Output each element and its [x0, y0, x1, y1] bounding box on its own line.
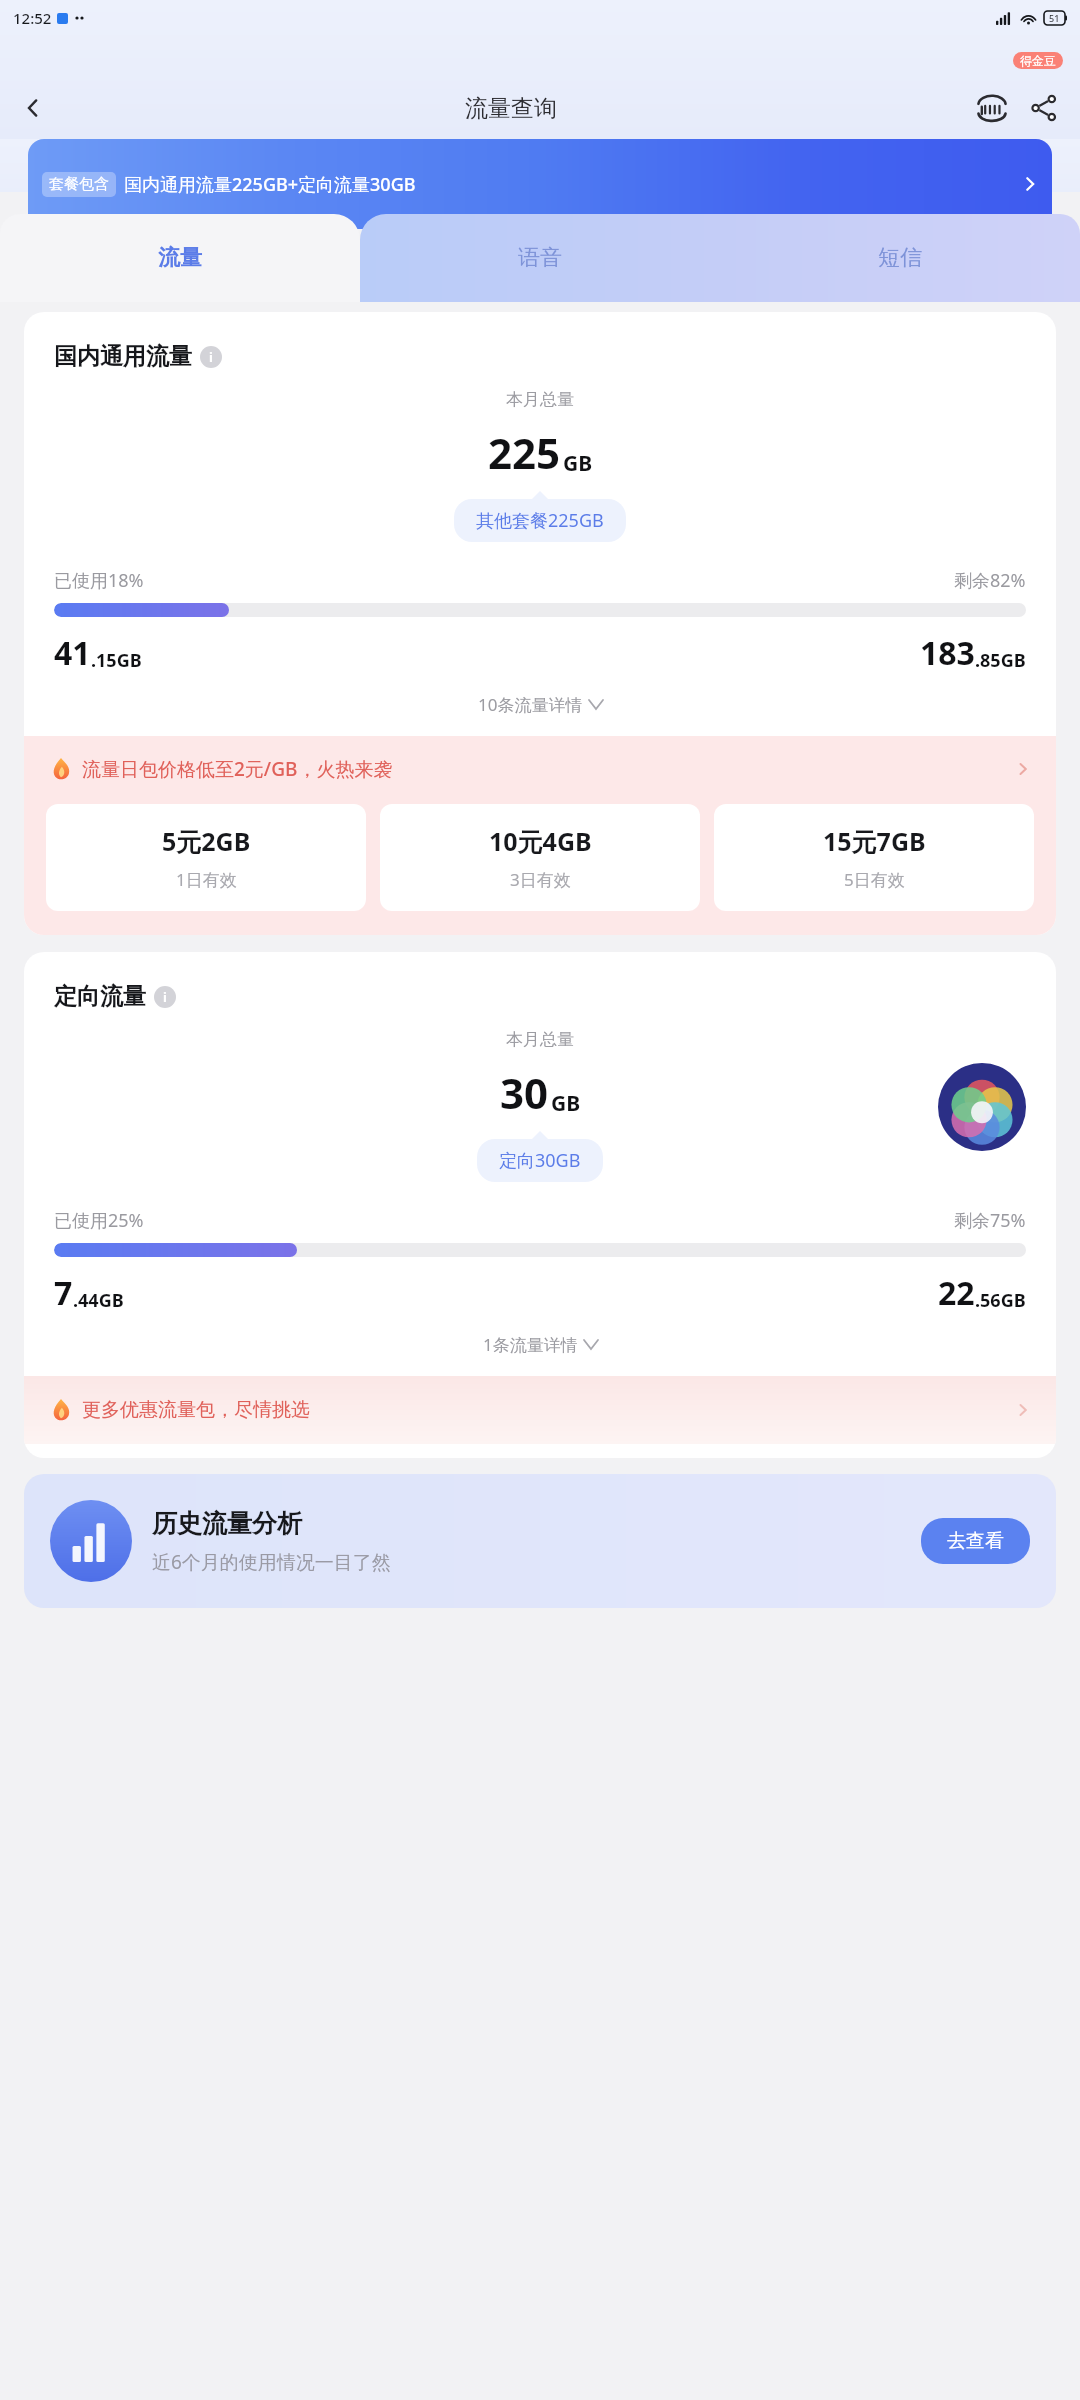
- button[interactable]: 10条流量详情: [54, 693, 1026, 716]
- staticText: 30: [500, 1064, 549, 1121]
- staticText: 短信: [878, 244, 922, 272]
- staticText: 得金豆: [1020, 53, 1056, 68]
- staticText: 3日有效: [510, 868, 571, 891]
- button[interactable]: 5元2GB: [46, 804, 366, 911]
- staticText: 已使用18%: [54, 568, 144, 593]
- staticText: 语音: [518, 244, 562, 272]
- staticText: GB: [551, 1089, 581, 1118]
- staticText: 更多优惠流量包，尽情挑选: [82, 1398, 310, 1422]
- staticText: 剩余82%: [954, 568, 1026, 593]
- staticText: i: [209, 348, 213, 366]
- button[interactable]: 去查看: [921, 1518, 1030, 1564]
- staticText: .85GB: [975, 648, 1026, 673]
- staticText: 去查看: [947, 1529, 1004, 1553]
- staticText: 历史流量分析: [152, 1508, 302, 1539]
- staticText: 国内通用流量: [54, 342, 192, 371]
- staticText: .15GB: [91, 648, 142, 673]
- button[interactable]: 历史流量分析: [24, 1474, 1056, 1608]
- staticText: 10元4GB: [489, 824, 592, 858]
- button[interactable]: 定向30GB: [477, 1139, 603, 1182]
- staticText: GB: [563, 449, 593, 478]
- button[interactable]: Gold beans: [966, 82, 1018, 134]
- button[interactable]: 更多优惠流量包，尽情挑选: [24, 1376, 1056, 1444]
- staticText: 其他套餐225GB: [476, 508, 604, 533]
- staticText: 剩余75%: [954, 1208, 1026, 1233]
- button[interactable]: 其他套餐225GB: [454, 499, 626, 542]
- staticText: .56GB: [975, 1288, 1026, 1313]
- staticText: 近6个月的使用情况一目了然: [152, 1549, 391, 1575]
- staticText: 流量日包价格低至2元/GB，火热来袭: [82, 756, 393, 782]
- staticText: 套餐包含: [49, 175, 109, 194]
- button[interactable]: 语音: [360, 214, 720, 302]
- staticText: 5日有效: [844, 868, 905, 891]
- staticText: 本月总量: [506, 1029, 574, 1050]
- staticText: 定向30GB: [499, 1148, 581, 1173]
- staticText: i: [163, 988, 167, 1006]
- button[interactable]: 套餐包含: [28, 139, 1052, 229]
- staticText: 51: [1049, 12, 1060, 24]
- staticText: 22: [938, 1271, 975, 1315]
- staticText: 本月总量: [506, 389, 574, 410]
- button[interactable]: 10元4GB: [380, 804, 700, 911]
- staticText: 5元2GB: [162, 824, 251, 858]
- button[interactable]: 流量日包价格低至2元/GB，火热来袭: [24, 736, 1056, 802]
- staticText: 已使用25%: [54, 1208, 144, 1233]
- staticText: 1日有效: [176, 868, 237, 891]
- staticText: 定向流量: [54, 982, 146, 1011]
- staticText: 流量: [158, 244, 202, 272]
- button[interactable]: Back: [10, 85, 56, 131]
- staticText: .44GB: [73, 1288, 124, 1313]
- button[interactable]: Info: [200, 346, 222, 368]
- button[interactable]: 短信: [720, 214, 1080, 302]
- button[interactable]: Share: [1018, 82, 1070, 134]
- button[interactable]: Info: [154, 986, 176, 1008]
- staticText: 12:52: [13, 8, 52, 28]
- button[interactable]: 1条流量详情: [54, 1333, 1026, 1356]
- staticText: 7: [54, 1271, 73, 1315]
- staticText: 183: [920, 631, 975, 675]
- staticText: 225: [488, 424, 561, 481]
- button[interactable]: 流量: [0, 214, 360, 302]
- button[interactable]: 15元7GB: [714, 804, 1034, 911]
- staticText: 国内通用流量225GB+定向流量30GB: [124, 172, 416, 197]
- staticText: 15元7GB: [823, 824, 926, 858]
- staticText: 1条流量详情: [483, 1333, 578, 1356]
- staticText: 10条流量详情: [478, 693, 583, 716]
- staticText: 流量查询: [465, 94, 557, 123]
- staticText: 41: [54, 631, 91, 675]
